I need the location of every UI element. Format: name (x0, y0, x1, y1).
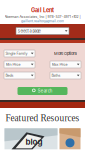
staticText: Beds (5, 73, 13, 78)
button[interactable]: Beds (4, 72, 35, 79)
staticText: Featured Resources (5, 113, 79, 123)
button[interactable]: Single Family (4, 50, 35, 57)
staticText: Max Price (51, 62, 67, 67)
button[interactable]: Max Price (50, 61, 81, 68)
staticText: gaillent.realtor@gmail.com (21, 19, 64, 23)
staticText: blog (25, 137, 42, 147)
staticText: Baths (51, 73, 60, 78)
staticText: Single Family (5, 51, 27, 56)
button[interactable]: Min Price (4, 61, 35, 68)
staticText: Select a page (17, 29, 40, 33)
button[interactable]: Select a page (16, 27, 69, 34)
staticText: Aberman Associates, Inc | 978-537-4971 x… (4, 15, 80, 19)
button[interactable]: Search (17, 87, 67, 95)
staticText: Gail Lent (31, 7, 54, 14)
button[interactable]: Baths (50, 72, 81, 79)
staticText: Min Price (5, 62, 20, 67)
button[interactable]: gaillent.realtor@gmail.com (21, 19, 64, 23)
staticText: Search (38, 88, 53, 94)
staticText: More Options (54, 51, 77, 56)
